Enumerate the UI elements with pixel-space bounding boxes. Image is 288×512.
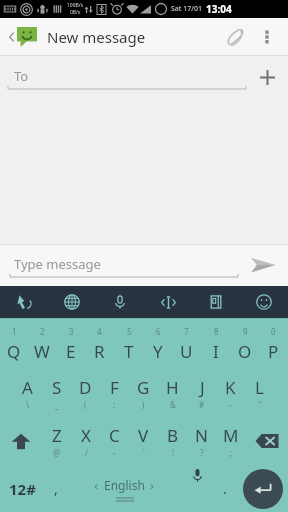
- staticText: :: [113, 399, 116, 410]
- staticText: ‹: [94, 476, 99, 494]
- button[interactable]: N: [187, 417, 216, 465]
- button[interactable]: B: [158, 417, 187, 465]
- button[interactable]: L: [245, 369, 274, 417]
- button[interactable]: ,: [44, 465, 68, 512]
- staticText: 7: [184, 326, 189, 337]
- button[interactable]: Clipboard: [192, 286, 240, 318]
- button[interactable]: 0: [259, 319, 288, 369]
- button[interactable]: Navigate up: [6, 27, 39, 47]
- staticText: B: [167, 424, 179, 447]
- staticText: R: [94, 340, 105, 363]
- button[interactable]: K: [216, 369, 245, 417]
- button[interactable]: Z: [42, 417, 71, 465]
- button[interactable]: F: [100, 369, 129, 417]
- button[interactable]: Language: [48, 286, 96, 318]
- button[interactable]: V: [129, 417, 158, 465]
- button[interactable]: A: [13, 369, 42, 417]
- staticText: 13:04: [206, 2, 232, 16]
- staticText: ': [143, 447, 145, 458]
- staticText: X: [81, 424, 91, 447]
- staticText: 3: [69, 326, 74, 337]
- staticText: New message: [47, 27, 146, 47]
- button[interactable]: .: [213, 465, 237, 512]
- button[interactable]: Backspace: [245, 417, 288, 465]
- staticText: I: [213, 340, 219, 363]
- staticText: G: [137, 376, 150, 399]
- staticText: O: [238, 340, 252, 363]
- button[interactable]: X: [71, 417, 100, 465]
- button[interactable]: 8: [201, 319, 230, 369]
- staticText: U: [180, 340, 193, 363]
- button[interactable]: Type message: [10, 252, 238, 278]
- button[interactable]: D: [71, 369, 100, 417]
- staticText: Z: [52, 424, 62, 447]
- staticText: A: [22, 376, 33, 399]
- button[interactable]: Shift: [0, 417, 42, 465]
- staticText: K: [225, 376, 236, 399]
- staticText: 8: [214, 326, 219, 337]
- button[interactable]: Voice input: [181, 465, 213, 512]
- staticText: 0: [271, 326, 276, 337]
- staticText: T: [124, 340, 134, 363]
- staticText: 5: [127, 326, 132, 337]
- button[interactable]: S: [42, 369, 71, 417]
- staticText: .: [223, 479, 227, 498]
- button[interactable]: Enter: [237, 465, 288, 512]
- staticText: _: [55, 399, 59, 410]
- staticText: E: [66, 340, 76, 363]
- staticText: 9: [243, 326, 248, 337]
- button[interactable]: 3: [56, 319, 85, 369]
- staticText: ;: [230, 447, 233, 458]
- staticText: To: [14, 67, 29, 85]
- button[interactable]: 4: [85, 319, 114, 369]
- button[interactable]: M: [216, 417, 245, 465]
- staticText: ,: [54, 479, 58, 498]
- button[interactable]: C: [100, 417, 129, 465]
- staticText: W: [34, 340, 50, 363]
- button[interactable]: 9: [230, 319, 259, 369]
- button[interactable]: J: [187, 369, 216, 417]
- staticText: ›: [150, 476, 155, 494]
- staticText: English: [104, 477, 145, 493]
- button[interactable]: 12#: [0, 465, 44, 512]
- staticText: #: [199, 399, 205, 410]
- staticText: ): [142, 399, 145, 410]
- staticText: J: [200, 376, 205, 399]
- staticText: P: [268, 340, 279, 363]
- button[interactable]: Send: [244, 246, 282, 284]
- staticText: H: [166, 376, 179, 399]
- button[interactable]: Space: [68, 465, 181, 512]
- staticText: (: [84, 399, 87, 410]
- staticText: S: [52, 376, 62, 399]
- staticText: ": [258, 399, 262, 410]
- staticText: 2: [40, 326, 45, 337]
- staticText: Sat 17/01: [171, 4, 203, 14]
- button[interactable]: 7: [172, 319, 201, 369]
- button[interactable]: Cursor control: [144, 286, 192, 318]
- staticText: /: [85, 447, 88, 458]
- button[interactable]: Attach: [218, 20, 252, 54]
- staticText: @: [53, 447, 61, 458]
- button[interactable]: G: [129, 369, 158, 417]
- staticText: N: [195, 424, 208, 447]
- button[interactable]: Emoji: [240, 286, 288, 318]
- button[interactable]: Add recipient: [252, 62, 282, 92]
- button[interactable]: 1: [0, 319, 28, 369]
- staticText: 0B/s: [70, 9, 81, 16]
- button[interactable]: 5: [114, 319, 143, 369]
- staticText: 1: [12, 326, 17, 337]
- staticText: 12#: [9, 479, 36, 499]
- button[interactable]: 2: [28, 319, 56, 369]
- staticText: M: [223, 424, 239, 447]
- button[interactable]: H: [158, 369, 187, 417]
- button[interactable]: 6: [143, 319, 172, 369]
- staticText: 4: [97, 326, 102, 337]
- staticText: Y: [153, 340, 163, 363]
- staticText: -: [229, 399, 232, 410]
- staticText: ?: [200, 447, 204, 458]
- button[interactable]: More options: [252, 22, 282, 52]
- button[interactable]: Handwriting: [0, 286, 48, 318]
- button[interactable]: Voice input: [96, 286, 144, 318]
- staticText: &: [170, 399, 176, 410]
- button[interactable]: To: [8, 64, 246, 90]
